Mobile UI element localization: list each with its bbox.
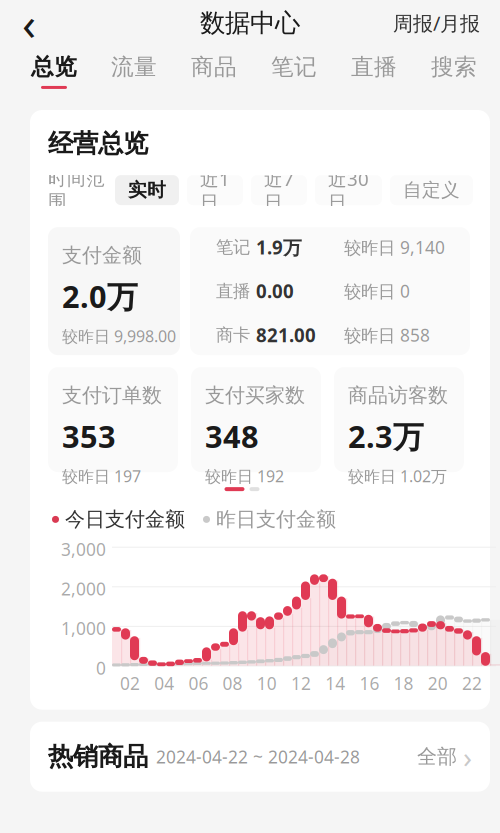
staticText: 较昨日 192: [205, 465, 284, 487]
staticText: 353: [62, 416, 116, 456]
staticText: 经营总览: [48, 128, 148, 159]
button[interactable]: 直播: [334, 46, 414, 96]
button[interactable]: 支付金额: [48, 227, 180, 355]
staticText: 流量: [111, 53, 157, 81]
staticText: 笔记: [271, 53, 317, 81]
staticText: 较昨日 1.02万: [348, 465, 447, 487]
staticText: 热销商品: [48, 741, 148, 772]
staticText: 全部: [417, 744, 457, 769]
button[interactable]: 搜索: [414, 46, 494, 96]
staticText: 0.00: [256, 279, 294, 303]
staticText: 自定义: [403, 179, 460, 202]
staticText: 06: [188, 672, 208, 695]
button[interactable]: 实时: [115, 175, 179, 205]
button[interactable]: 支付买家数: [191, 367, 321, 472]
staticText: 直播: [216, 280, 250, 302]
staticText: 08: [223, 672, 243, 695]
staticText: 数据中心: [200, 7, 300, 38]
staticText: 2.0万: [62, 276, 138, 316]
staticText: ‹: [22, 0, 36, 53]
button[interactable]: 周报/月报: [379, 0, 494, 46]
staticText: 1.9万: [256, 235, 302, 260]
staticText: 近1日: [200, 166, 230, 214]
staticText: 12: [291, 672, 311, 695]
staticText: 近7日: [264, 166, 294, 214]
staticText: 2,000: [61, 577, 106, 600]
staticText: 18: [394, 672, 414, 695]
staticText: 02: [120, 672, 140, 695]
button[interactable]: Back: [6, 0, 52, 46]
staticText: 支付买家数: [205, 383, 305, 408]
staticText: 2.3万: [348, 416, 424, 456]
button[interactable]: 商品: [174, 46, 254, 96]
staticText: 支付金额: [62, 243, 142, 268]
staticText: 昨日支付金额: [216, 507, 336, 532]
staticText: 支付订单数: [62, 383, 162, 408]
button[interactable]: 自定义: [390, 175, 473, 205]
staticText: 实时: [128, 179, 166, 202]
staticText: 20: [428, 672, 448, 695]
staticText: 商品: [191, 53, 237, 81]
staticText: 较昨日 858: [344, 323, 430, 346]
staticText: 16: [359, 672, 379, 695]
staticText: 周报/月报: [393, 10, 480, 36]
staticText: 22: [462, 672, 482, 695]
button[interactable]: 热销商品: [30, 722, 490, 792]
button[interactable]: 近1日: [187, 175, 243, 205]
staticText: 较昨日 0: [344, 280, 410, 303]
staticText: 1,000: [61, 617, 106, 640]
staticText: 商卡: [216, 324, 250, 346]
button[interactable]: 商品访客数: [334, 367, 464, 472]
staticText: 821.00: [256, 322, 316, 347]
staticText: 较昨日 9,140: [344, 236, 445, 259]
button[interactable]: 支付订单数: [48, 367, 178, 472]
button[interactable]: 流量: [94, 46, 174, 96]
staticText: ›: [463, 737, 472, 776]
staticText: 348: [205, 416, 259, 456]
staticText: 较昨日 197: [62, 465, 141, 487]
button[interactable]: 总览: [14, 46, 94, 96]
button[interactable]: 近30日: [315, 175, 382, 205]
staticText: 3,000: [61, 538, 106, 561]
staticText: 时间范围: [48, 167, 105, 213]
staticText: 10: [257, 672, 277, 695]
staticText: 0: [96, 656, 106, 679]
staticText: 直播: [351, 53, 397, 81]
staticText: 商品访客数: [348, 383, 448, 408]
button[interactable]: 笔记: [254, 46, 334, 96]
staticText: 总览: [31, 53, 77, 81]
staticText: 今日支付金额: [65, 507, 185, 532]
staticText: 2024-04-22 ~ 2024-04-28: [156, 745, 360, 768]
staticText: 笔记: [216, 237, 250, 258]
button[interactable]: 近7日: [251, 175, 307, 205]
staticText: 近30日: [328, 166, 369, 214]
staticText: 14: [325, 672, 345, 695]
staticText: 较昨日 9,998.00: [62, 325, 176, 347]
staticText: 04: [154, 672, 174, 695]
staticText: 搜索: [431, 53, 477, 81]
